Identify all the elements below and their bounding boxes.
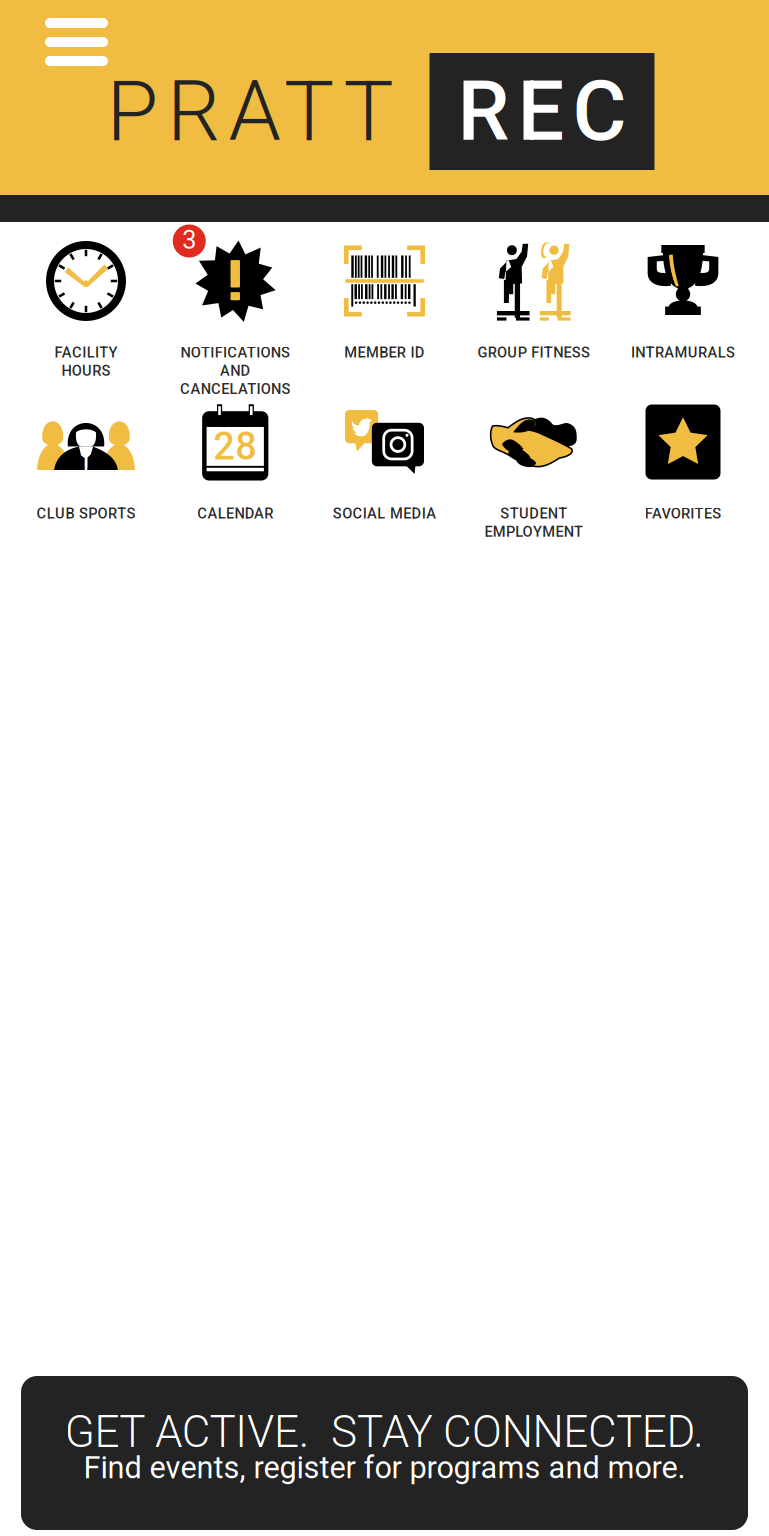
button[interactable]: FAVORITES xyxy=(608,383,758,544)
button[interactable]: GROUP FITNESS xyxy=(459,222,608,383)
staticText: GROUP FITNESS xyxy=(477,344,590,361)
staticText: AND xyxy=(220,362,251,379)
button[interactable]: Menu xyxy=(0,0,128,86)
staticText: 28 xyxy=(213,424,257,469)
button[interactable]: FACILITY xyxy=(11,222,161,383)
staticText: CLUB SPORTS xyxy=(36,505,135,522)
staticText: STUDENT xyxy=(500,505,567,522)
staticText: FACILITY xyxy=(54,344,118,361)
button[interactable]: SOCIAL MEDIA xyxy=(310,383,459,544)
staticText: NOTIFICATIONS xyxy=(180,344,290,361)
staticText: GET ACTIVE. STAY CONNECTED. xyxy=(65,1406,704,1458)
staticText: REC xyxy=(457,63,626,160)
staticText: PRATT xyxy=(106,62,393,161)
button[interactable]: 1 xyxy=(11,383,161,544)
staticText: SOCIAL MEDIA xyxy=(333,505,436,522)
staticText: MEMBER ID xyxy=(344,344,425,361)
staticText: HOURS xyxy=(61,362,111,379)
staticText: CALENDAR xyxy=(197,505,273,522)
button[interactable]: 3 xyxy=(161,222,310,383)
button[interactable]: 28 xyxy=(161,383,310,544)
staticText: 3 xyxy=(182,225,196,255)
staticText: INTRAMURALS xyxy=(631,344,735,361)
staticText: Find events, register for programs and m… xyxy=(83,1450,685,1486)
staticText: EMPLOYMENT xyxy=(484,523,583,540)
button[interactable]: GET ACTIVE. STAY CONNECTED. xyxy=(21,1376,748,1530)
button[interactable]: STUDENT xyxy=(459,383,608,544)
button[interactable]: MEMBER ID xyxy=(310,222,459,383)
staticText: FAVORITES xyxy=(645,505,721,522)
button[interactable]: INTRAMURALS xyxy=(608,222,758,383)
staticText: 1 xyxy=(79,446,92,474)
staticText: CANCELATIONS xyxy=(180,380,290,398)
